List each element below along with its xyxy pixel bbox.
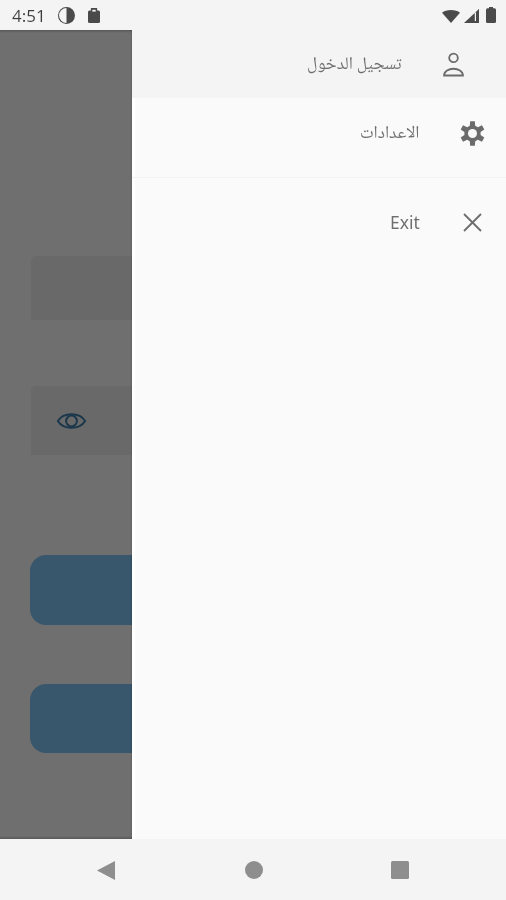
button[interactable]: الاعدادات: [132, 98, 506, 177]
button[interactable]: Back: [76, 840, 136, 900]
button[interactable]: Home: [224, 840, 284, 900]
button[interactable]: Exit: [132, 178, 506, 269]
staticText: الاعدادات: [360, 121, 420, 145]
button[interactable]: Close navigation drawer: [0, 30, 506, 839]
button[interactable]: Recents: [370, 840, 430, 900]
staticText: Exit: [390, 210, 420, 234]
button[interactable]: تسجيل الدخول: [132, 30, 506, 98]
staticText: تسجيل الدخول: [307, 52, 402, 76]
staticText: 4:51: [12, 4, 46, 27]
